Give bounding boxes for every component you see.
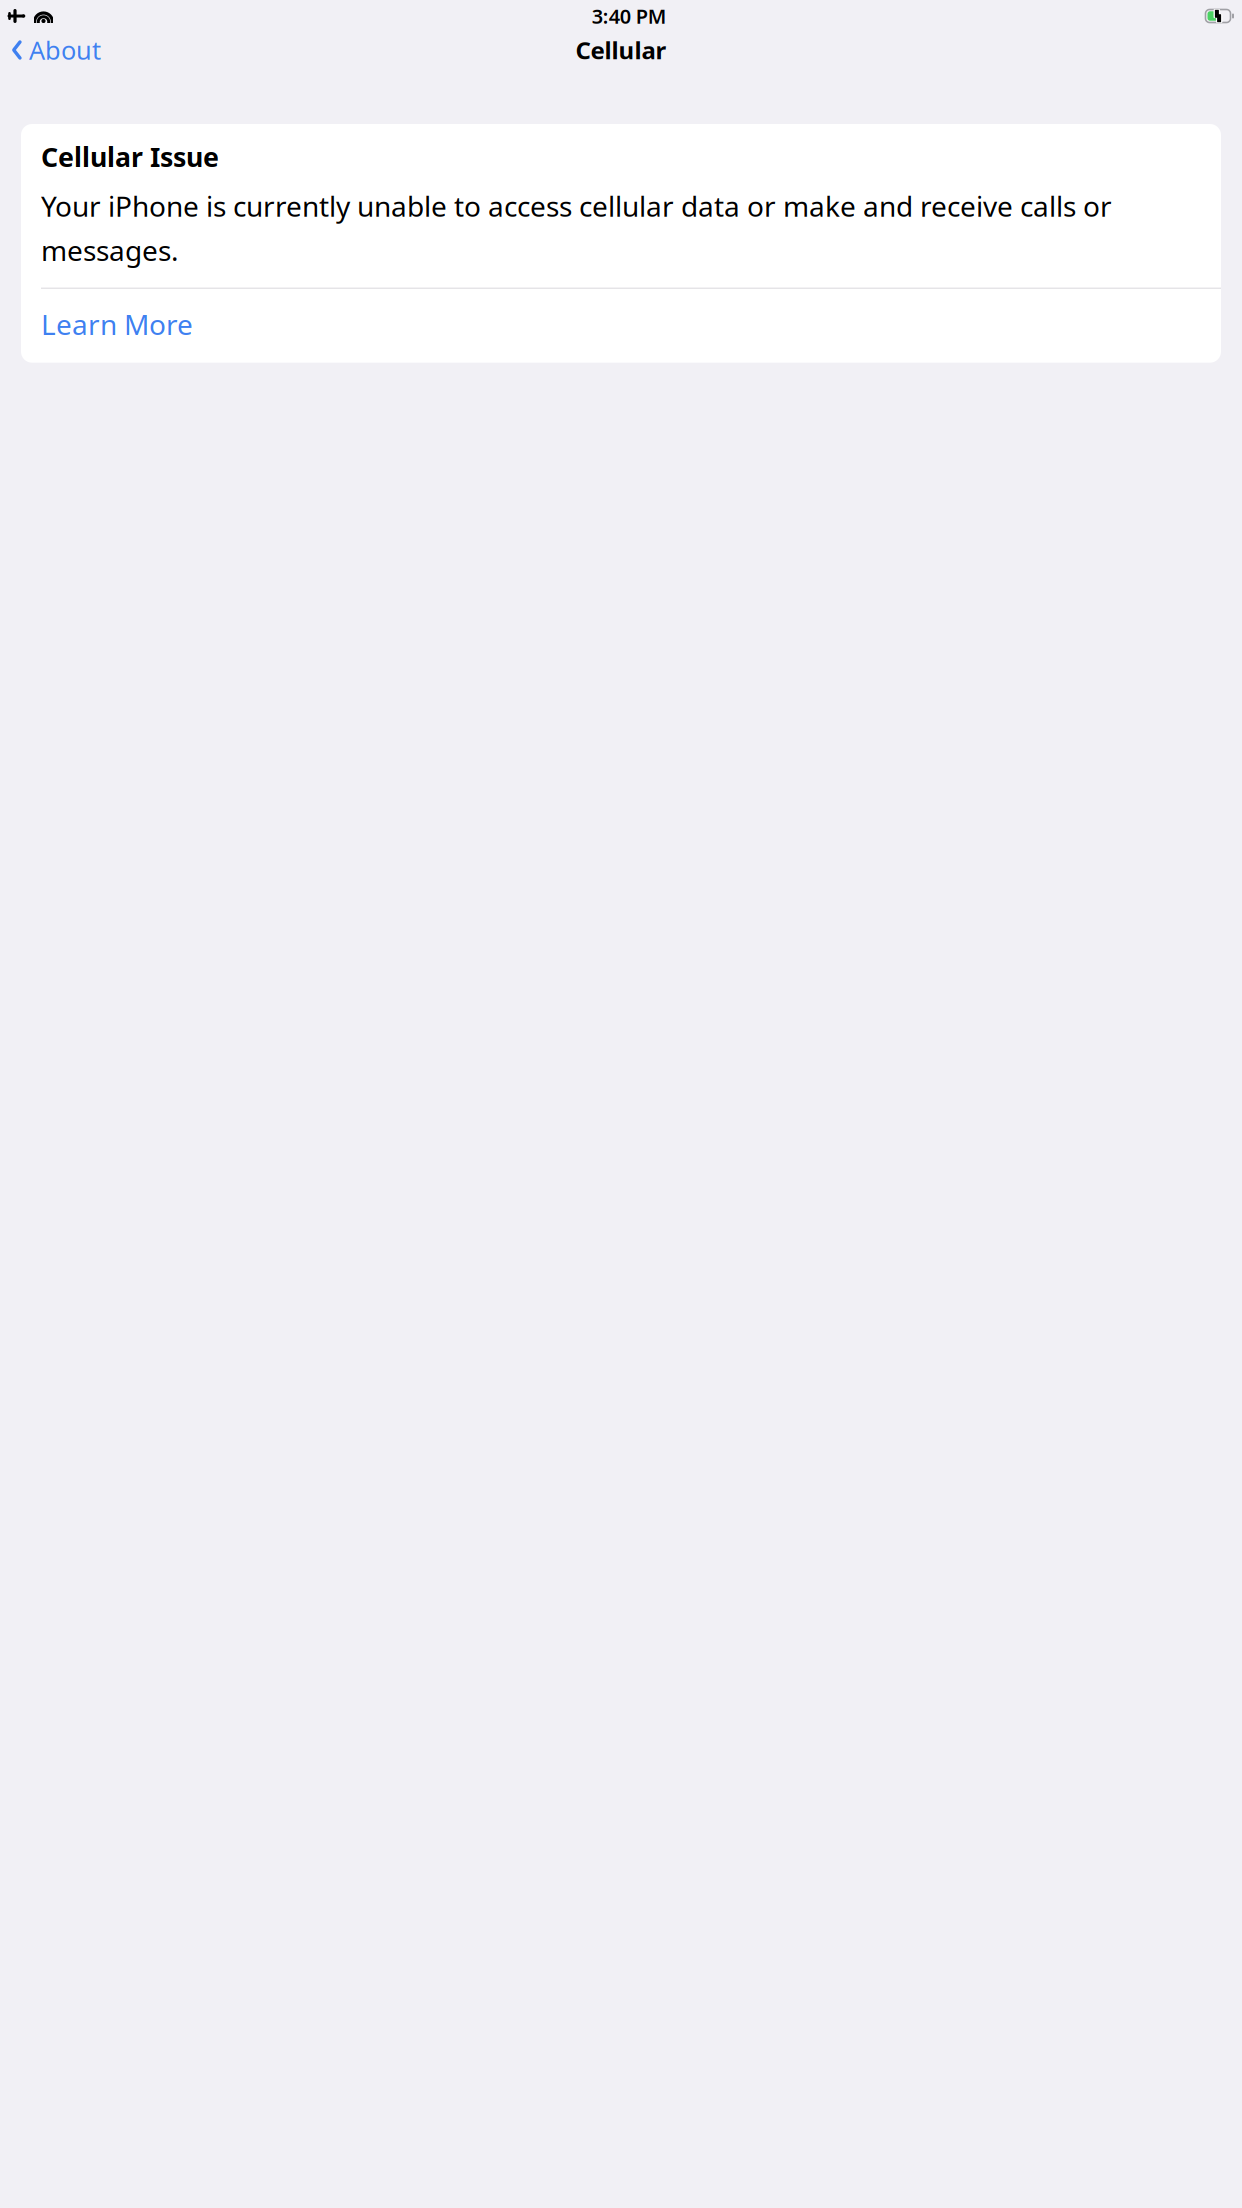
button[interactable]: About xyxy=(2,26,110,74)
staticText: 3:40 PM xyxy=(592,3,667,29)
staticText: Learn More xyxy=(41,305,193,343)
staticText: Your iPhone is currently unable to acces… xyxy=(41,187,1112,269)
button[interactable]: Learn More xyxy=(41,288,1221,363)
staticText: Cellular xyxy=(575,34,666,66)
staticText: About xyxy=(29,33,101,67)
staticText: Cellular Issue xyxy=(41,139,219,174)
